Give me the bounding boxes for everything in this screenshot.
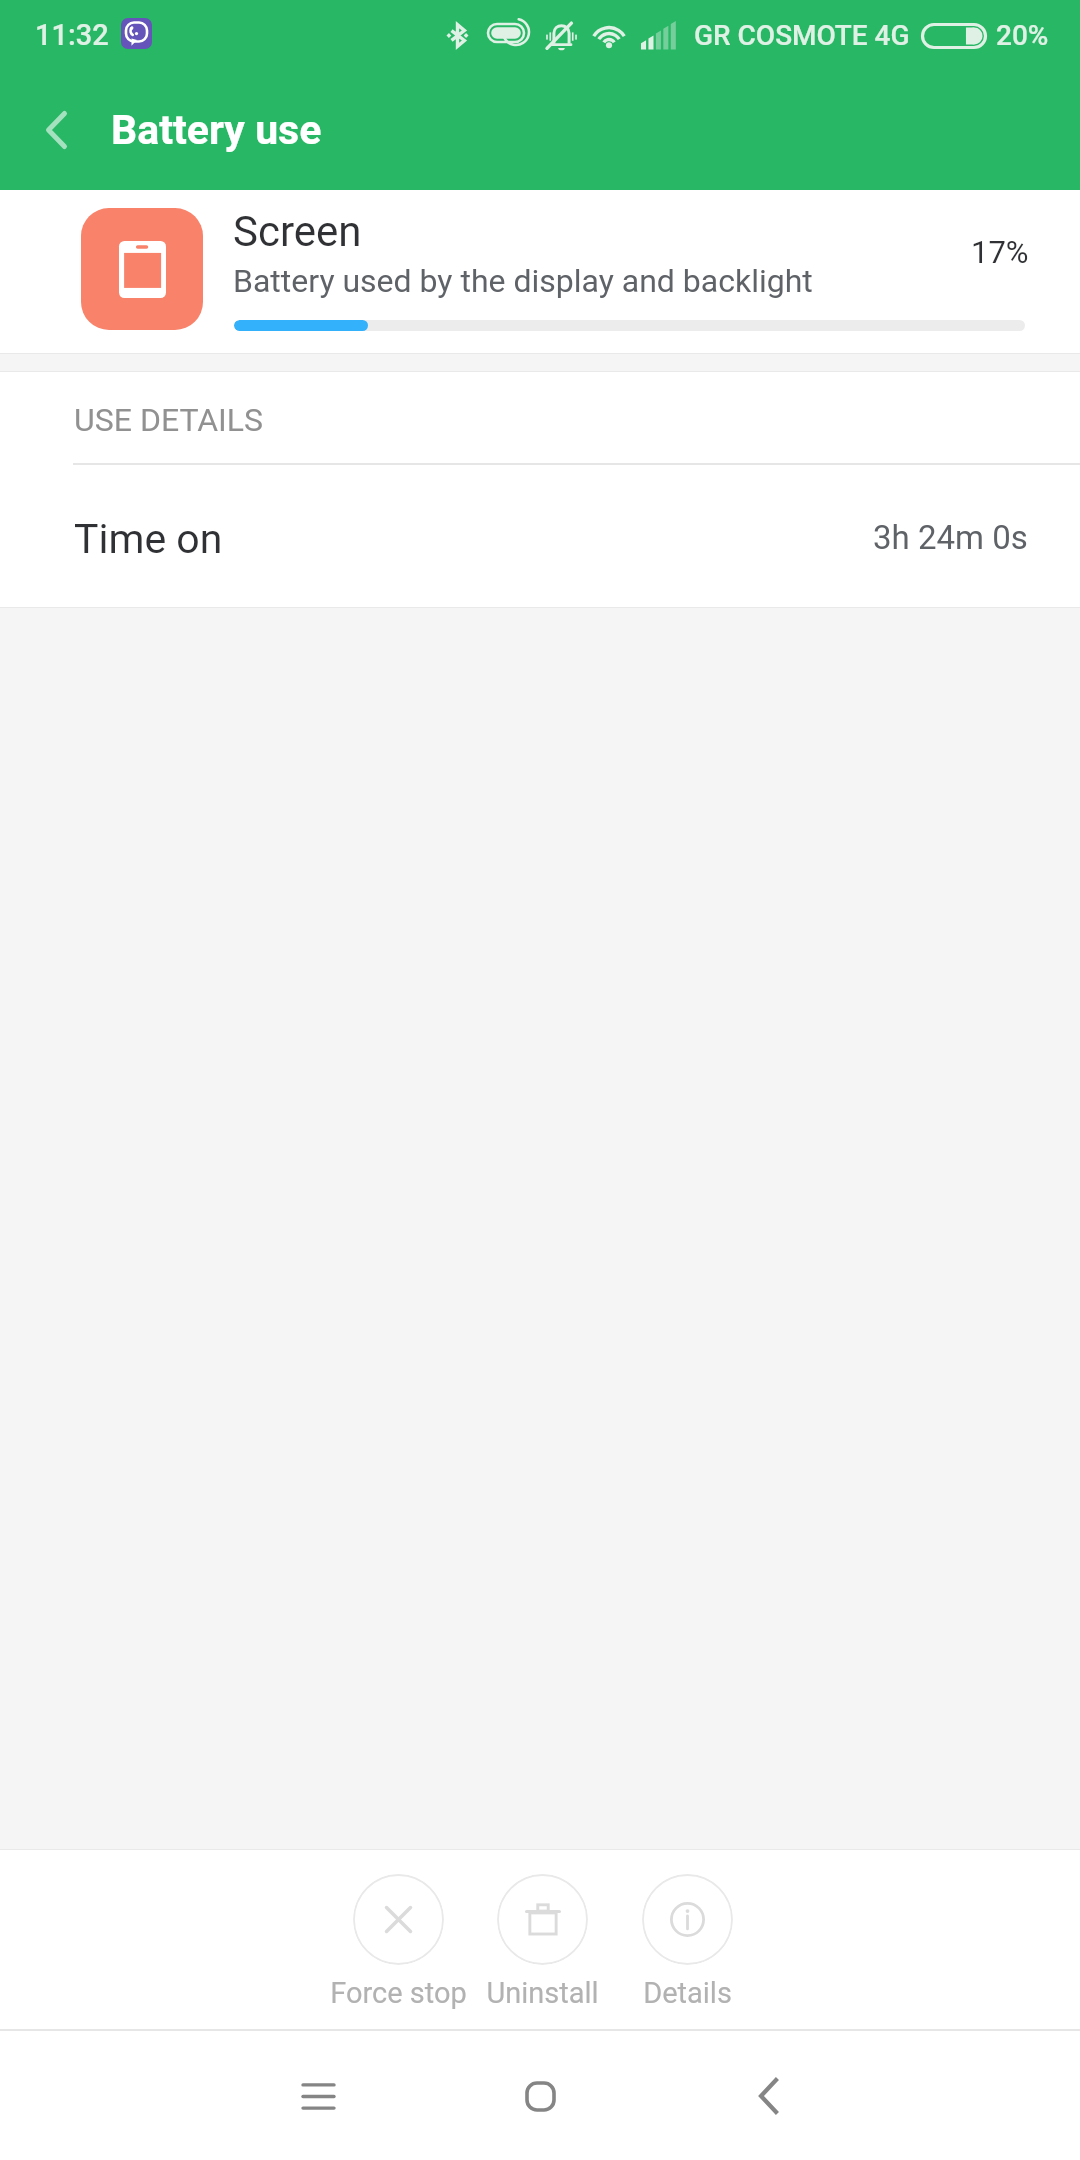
staticText: Time on <box>74 515 223 563</box>
staticText: 17% <box>971 234 1029 270</box>
staticText: Battery use <box>111 106 322 154</box>
staticText: 20% <box>996 19 1049 52</box>
staticText: Battery used by the display and backligh… <box>233 262 813 300</box>
button[interactable]: Time on <box>0 467 1080 611</box>
staticText: 3h 24m 0s <box>873 518 1028 557</box>
button[interactable]: Details <box>602 1874 772 2010</box>
staticText: Screen <box>233 207 362 256</box>
staticText: Force stop <box>330 1976 467 2010</box>
staticText: 11:32 <box>35 18 109 52</box>
button[interactable]: Screen <box>0 190 1080 353</box>
button[interactable]: Home <box>480 2036 600 2156</box>
staticText: Details <box>643 1976 732 2010</box>
button[interactable]: Back <box>707 2036 827 2156</box>
staticText: USE DETAILS <box>74 401 264 439</box>
button[interactable]: Force stop <box>313 1874 483 2010</box>
button[interactable]: Navigate up <box>17 70 95 190</box>
staticText: GR COSMOTE 4G <box>694 19 910 52</box>
staticText: Uninstall <box>486 1976 599 2010</box>
button[interactable]: Recent apps <box>258 2036 378 2156</box>
button[interactable]: Uninstall <box>457 1874 627 2010</box>
